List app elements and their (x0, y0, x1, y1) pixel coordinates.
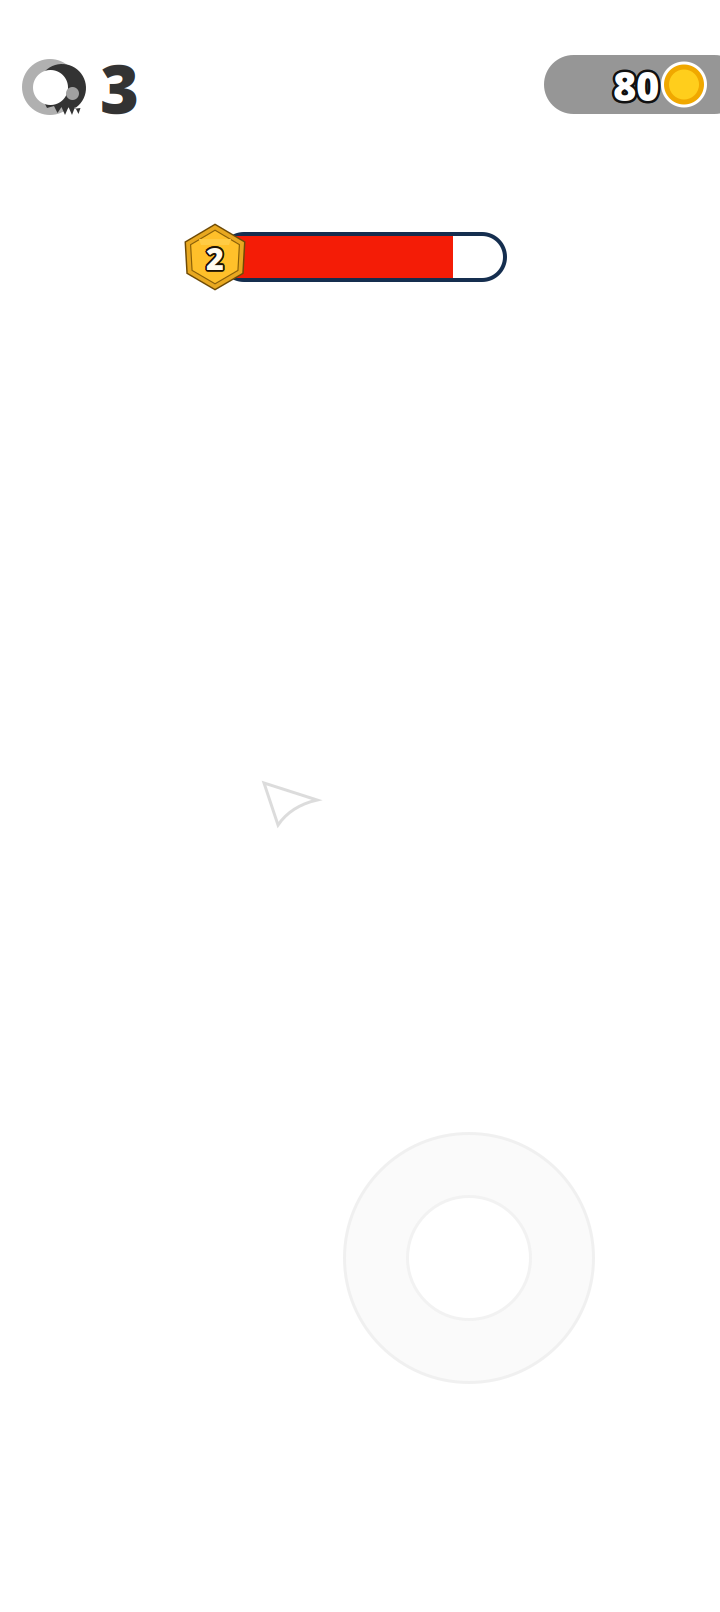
staticText: 2 (207, 239, 225, 280)
staticText: 80 (610, 59, 656, 112)
staticText: 80 (615, 57, 661, 110)
button[interactable]: Coins: 80 (544, 55, 720, 114)
staticText: 80 (611, 61, 657, 114)
staticText: 2 (204, 238, 222, 278)
staticText: 80 (613, 59, 659, 112)
staticText: 3 (100, 44, 139, 132)
staticText: 2 (208, 238, 226, 278)
staticText: 2 (206, 238, 224, 278)
staticText: 2 (207, 236, 225, 277)
staticText: 80 (613, 56, 659, 109)
staticText: 80 (611, 57, 657, 110)
staticText: 2 (206, 236, 224, 276)
staticText: 80 (613, 61, 659, 115)
staticText: 80 (616, 59, 662, 112)
staticText: 2 (205, 236, 223, 277)
staticText: 2 (205, 239, 223, 280)
staticText: 80 (615, 61, 661, 114)
button[interactable]: Move joystick (343, 1132, 595, 1384)
button[interactable]: Lives: 3 (22, 53, 139, 123)
staticText: 2 (206, 239, 224, 280)
